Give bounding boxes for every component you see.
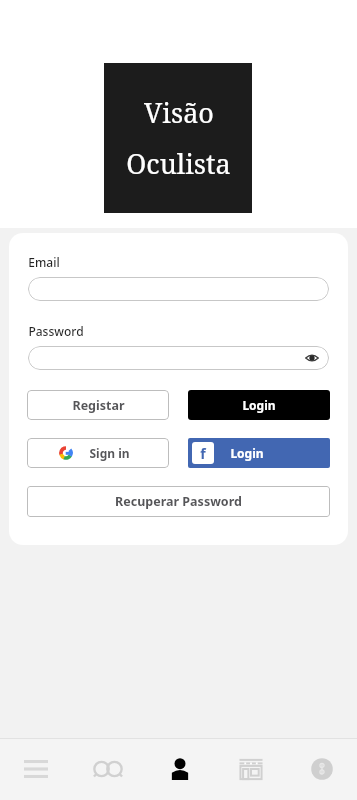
staticText: f <box>200 444 206 463</box>
button[interactable]: f <box>188 438 330 468</box>
button[interactable]: Health <box>286 738 357 800</box>
button[interactable]: Glasses <box>72 738 144 800</box>
staticText: Oculista <box>126 145 231 182</box>
button[interactable]: Profile <box>144 738 215 800</box>
staticText: Registar <box>72 397 125 414</box>
staticText: Login <box>242 397 276 413</box>
staticText: Sign in <box>89 445 130 461</box>
staticText: Email <box>28 254 60 270</box>
button[interactable]: Login <box>188 390 330 420</box>
staticText: Password <box>28 323 84 339</box>
button[interactable]: Show password <box>28 346 329 370</box>
button[interactable]: Menu <box>0 738 72 800</box>
button[interactable]: Registar <box>27 390 169 420</box>
button[interactable] <box>28 277 329 301</box>
button[interactable]: Store <box>215 738 286 800</box>
staticText: Visão <box>144 94 214 131</box>
staticText: Login <box>230 445 264 461</box>
button[interactable]: Sign in <box>27 438 169 468</box>
staticText: Recuperar Password <box>115 493 242 510</box>
button[interactable]: Recuperar Password <box>27 486 330 517</box>
button[interactable]: Show password <box>304 350 320 366</box>
